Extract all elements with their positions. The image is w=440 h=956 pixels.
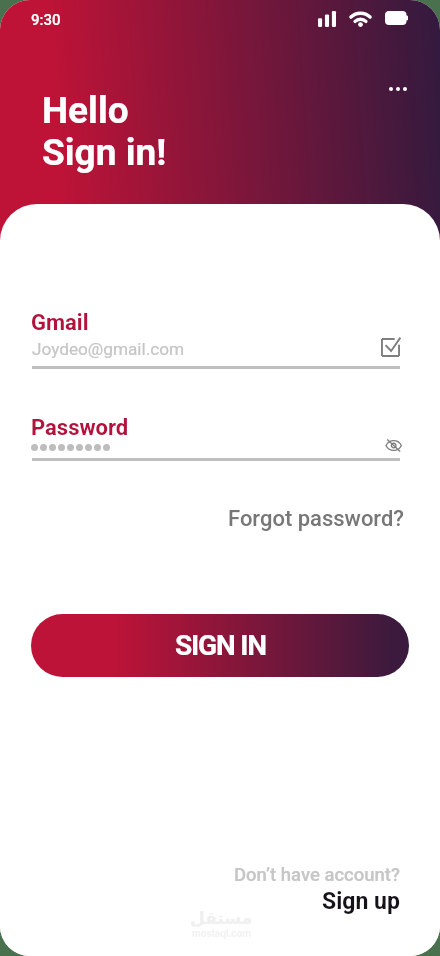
staticText: Hello Sign in! xyxy=(42,89,167,174)
staticText: مستقل xyxy=(190,908,253,928)
staticText: Joydeo@gmail.com xyxy=(32,339,185,359)
staticText: Gmail xyxy=(31,310,89,336)
staticText: SIGN IN xyxy=(175,629,266,662)
button[interactable]: More options xyxy=(377,68,418,109)
staticText: mostaql.com xyxy=(192,928,251,940)
button[interactable]: Email verified xyxy=(381,338,400,357)
button[interactable]: Toggle password visibility xyxy=(386,438,402,453)
staticText: Password xyxy=(31,415,129,441)
staticText: Don’t have account? xyxy=(234,864,400,886)
button[interactable]: Forgot password? xyxy=(222,500,411,538)
staticText: 9:30 xyxy=(31,11,61,29)
staticText: Forgot password? xyxy=(228,506,405,532)
button[interactable]: Sign up xyxy=(322,888,400,915)
button[interactable]: SIGN IN xyxy=(31,614,409,677)
staticText: Sign up xyxy=(322,888,400,915)
